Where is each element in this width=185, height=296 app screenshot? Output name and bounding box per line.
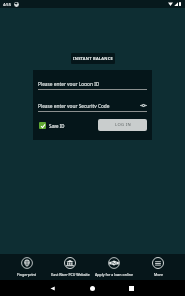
staticText: INSTANT BALANCE — [73, 56, 113, 61]
staticText: East River FCU Website — [51, 272, 90, 277]
staticText: 4:55 — [3, 2, 11, 7]
button[interactable]: Back — [47, 283, 58, 294]
staticText: Apply for a loan online — [95, 272, 133, 277]
button[interactable]: Please enter your Logon ID — [38, 81, 147, 90]
button[interactable]: More — [136, 254, 180, 280]
button[interactable]: Save ID — [39, 122, 65, 129]
button[interactable]: Apply for a loan online — [92, 254, 136, 280]
button[interactable]: LOG IN — [98, 119, 147, 131]
button[interactable]: INSTANT BALANCE — [71, 53, 115, 64]
button[interactable]: East River FCU Website — [48, 254, 92, 280]
staticText: More — [154, 272, 163, 277]
button[interactable]: Home — [87, 283, 98, 294]
button[interactable]: Recents — [126, 283, 137, 294]
staticText: Save ID — [49, 123, 65, 129]
staticText: Please enter your Security Code — [38, 103, 110, 108]
button[interactable]: Show password — [139, 103, 147, 108]
staticText: LOG IN — [115, 122, 131, 128]
staticText: Please enter your Logon ID — [38, 81, 100, 86]
button[interactable]: Fingerprint — [5, 254, 48, 280]
button[interactable]: Please enter your Security Code — [38, 103, 147, 112]
staticText: Fingerprint — [17, 272, 36, 277]
